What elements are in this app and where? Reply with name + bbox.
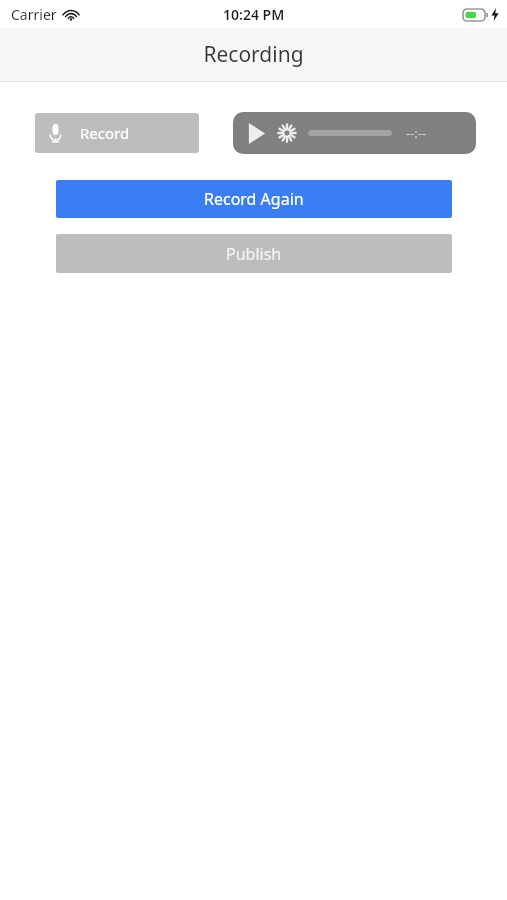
button[interactable]: Record — [35, 113, 199, 153]
staticText: 10:24 PM — [223, 5, 285, 24]
staticText: Recording — [203, 40, 304, 69]
staticText: Carrier — [11, 5, 57, 24]
staticText: Publish — [226, 243, 282, 265]
staticText: Record Again — [204, 188, 304, 210]
staticText: --:-- — [406, 124, 427, 142]
button[interactable]: Audio player — [233, 112, 476, 154]
button[interactable]: Publish — [56, 234, 452, 273]
button[interactable]: Record Again — [56, 180, 452, 218]
staticText: Record — [80, 123, 130, 143]
